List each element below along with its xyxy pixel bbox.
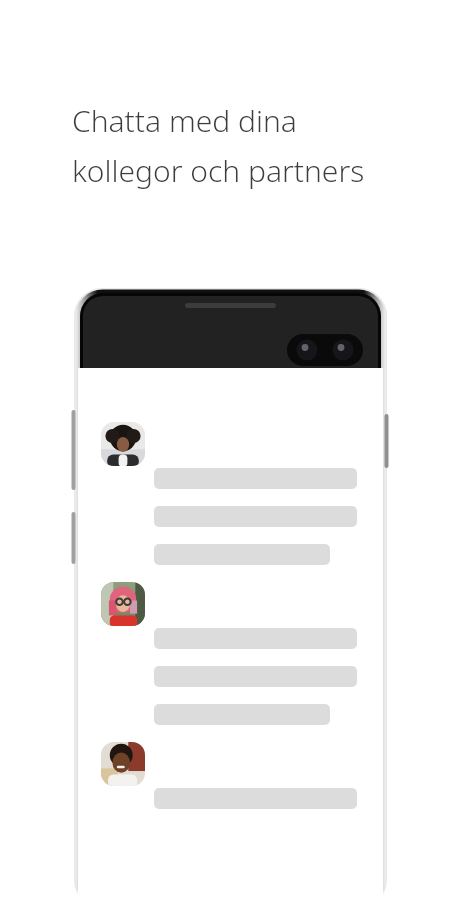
button[interactable]: Open conversation bbox=[101, 742, 145, 786]
button[interactable]: Open conversation bbox=[101, 582, 145, 626]
staticText: kollegor och partners bbox=[72, 150, 365, 191]
staticText: Chatta med dina bbox=[72, 100, 297, 141]
button[interactable]: Open conversation bbox=[101, 422, 145, 466]
